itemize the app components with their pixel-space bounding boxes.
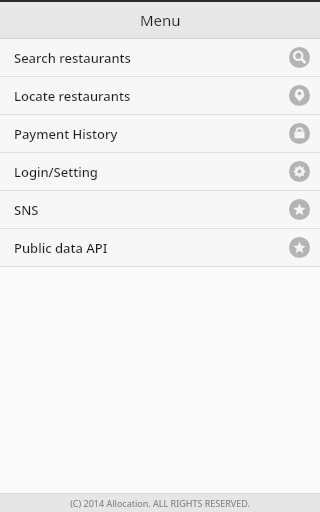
staticText: Search restaurants [14,49,131,67]
staticText: SNS [14,201,39,219]
staticText: Menu [140,10,181,30]
staticText: Login/Setting [14,163,98,181]
button[interactable]: Locate restaurants [0,77,320,114]
button[interactable]: Public data API [0,229,320,266]
staticText: Locate restaurants [14,87,131,105]
button[interactable]: Payment History [0,115,320,152]
button[interactable]: Login/Setting [0,153,320,190]
button[interactable]: Search restaurants [0,39,320,76]
staticText: Payment History [14,125,118,143]
button[interactable]: SNS [0,191,320,228]
staticText: (C) 2014 Allocation. ALL RIGHTS RESERVED… [70,497,250,509]
staticText: Public data API [14,239,108,257]
